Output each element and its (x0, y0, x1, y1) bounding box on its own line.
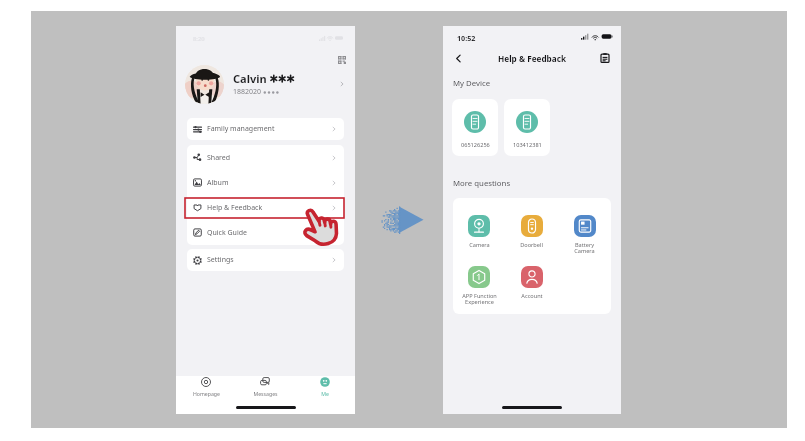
staticText: Camera (469, 241, 490, 249)
button[interactable]: Shared (193, 145, 337, 170)
button[interactable]: Scan QR code (334, 52, 350, 68)
staticText: Help & Feedback (498, 53, 566, 64)
button[interactable]: APP Function Experience (453, 266, 505, 306)
button[interactable]: Help & Feedback (193, 195, 337, 220)
staticText: Help & Feedback (207, 203, 263, 213)
button[interactable]: Camera (453, 215, 505, 249)
button[interactable]: Me (302, 377, 348, 397)
staticText: APP Function Experience (462, 292, 497, 306)
button[interactable]: Doorbell (505, 215, 558, 249)
staticText: Calvin (233, 71, 270, 86)
button[interactable]: Feedback records (595, 48, 615, 68)
button[interactable]: Battery Camera (558, 215, 611, 255)
staticText: My Device (453, 78, 491, 89)
staticText: Family management (207, 124, 275, 134)
button[interactable]: 065126256 (452, 99, 498, 156)
button[interactable]: Back (448, 48, 468, 68)
staticText: Album (207, 178, 229, 188)
staticText: Battery Camera (574, 241, 595, 255)
staticText: Settings (207, 255, 234, 265)
button[interactable]: 103412381 (504, 99, 550, 156)
staticText: Shared (207, 153, 231, 163)
staticText: Me (321, 390, 329, 397)
button[interactable]: Messages (242, 377, 288, 397)
staticText: Homepage (193, 390, 220, 397)
staticText: Doorbell (520, 241, 543, 249)
staticText: 103412381 (513, 141, 542, 149)
staticText: Account (521, 292, 543, 300)
button[interactable]: Account (505, 266, 558, 300)
button[interactable]: Calvin (185, 62, 345, 106)
button[interactable]: Quick Guide (193, 220, 337, 245)
staticText: Quick Guide (207, 228, 247, 238)
button[interactable]: Family management (193, 118, 337, 140)
staticText: Messages (253, 390, 278, 397)
staticText: More questions (453, 178, 511, 189)
staticText: 8:20 (193, 35, 205, 43)
staticText: 1882020 (233, 87, 263, 97)
button[interactable]: Album (193, 170, 337, 195)
button[interactable]: Settings (193, 249, 337, 271)
staticText: 065126256 (461, 141, 490, 149)
button[interactable]: Homepage (183, 377, 229, 397)
staticText: 10:52 (457, 33, 476, 43)
